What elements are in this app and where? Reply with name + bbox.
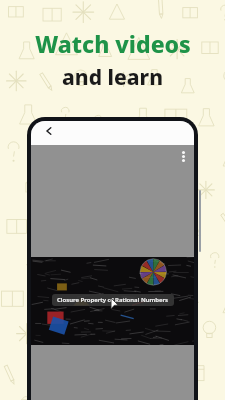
button[interactable]: More options [176,149,190,163]
staticText: and learn [62,63,163,92]
button[interactable]: Back [39,121,59,141]
button[interactable]: Closure Property of Rational Numbers [31,257,194,345]
staticText: Closure Property of Rational Numbers [57,296,169,304]
staticText: Watch videos [35,28,191,59]
